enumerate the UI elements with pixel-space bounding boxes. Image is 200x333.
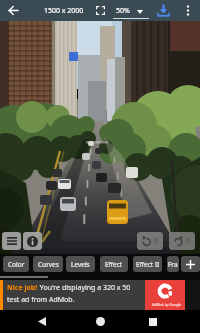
- button[interactable]: Levels: [66, 256, 95, 272]
- button[interactable]: Fra: [167, 256, 179, 272]
- button[interactable]: 0: [169, 232, 195, 250]
- button[interactable]: [92, 2, 108, 19]
- staticText: 1500 x 2000: [44, 6, 84, 16]
- button[interactable]: [144, 313, 161, 330]
- staticText: Effect II: [136, 260, 160, 269]
- button[interactable]: 0: [137, 232, 163, 250]
- button[interactable]: [92, 313, 109, 330]
- button[interactable]: 50%: [113, 2, 149, 19]
- staticText: Curves: [38, 260, 59, 269]
- staticText: 0: [154, 236, 159, 246]
- staticText: test ad from AdMob.: [7, 295, 75, 305]
- button[interactable]: [2, 232, 21, 250]
- button[interactable]: [153, 2, 173, 19]
- button[interactable]: [181, 256, 200, 272]
- button[interactable]: [4, 2, 22, 19]
- button[interactable]: [23, 232, 42, 250]
- button[interactable]: Curves: [33, 256, 63, 272]
- staticText: 0: [186, 236, 191, 246]
- staticText: Nice job!: [7, 283, 38, 293]
- button[interactable]: Effect II: [133, 256, 162, 272]
- button[interactable]: [33, 313, 50, 330]
- staticText: 50%: [116, 6, 130, 16]
- staticText: You're displaying a 320 x 50: [38, 283, 131, 293]
- staticText: Color: [8, 260, 25, 269]
- button[interactable]: Effect: [100, 256, 128, 272]
- staticText: Levels: [71, 260, 90, 269]
- staticText: Effect: [105, 260, 123, 269]
- staticText: AdMob by Google: [152, 302, 182, 307]
- button[interactable]: Nice job!: [0, 280, 200, 310]
- button[interactable]: [180, 2, 196, 19]
- button[interactable]: Color: [3, 256, 29, 272]
- staticText: Fra: [168, 260, 178, 269]
